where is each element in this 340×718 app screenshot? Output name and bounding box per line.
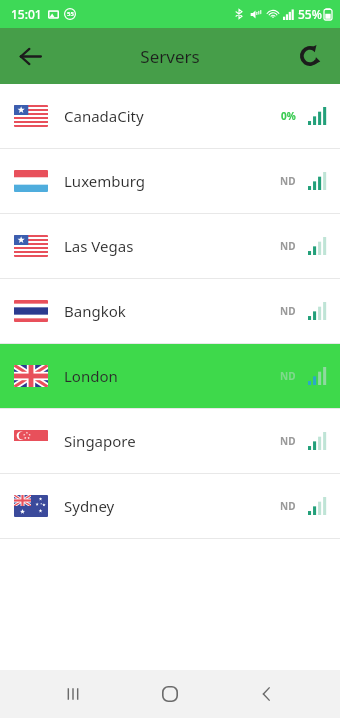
button[interactable]: Back: [243, 670, 291, 718]
button[interactable]: CanadaCity: [0, 84, 340, 148]
staticText: 0%: [281, 109, 296, 123]
button[interactable]: Recents: [49, 670, 97, 718]
staticText: CanadaCity: [64, 106, 144, 126]
staticText: ND: [280, 174, 296, 188]
button[interactable]: Luxemburg: [0, 149, 340, 213]
button[interactable]: Home: [146, 670, 194, 718]
staticText: 55: [67, 10, 74, 18]
staticText: Sydney: [64, 496, 115, 516]
staticText: London: [64, 366, 118, 386]
button[interactable]: Sydney: [0, 474, 340, 538]
button[interactable]: Refresh: [288, 34, 332, 78]
staticText: ND: [280, 499, 296, 513]
staticText: Singapore: [64, 431, 136, 451]
staticText: 55%: [298, 6, 322, 22]
staticText: Luxemburg: [64, 171, 146, 191]
staticText: Las Vegas: [64, 236, 134, 256]
staticText: Bangkok: [64, 301, 126, 321]
staticText: ND: [280, 304, 296, 318]
button[interactable]: Bangkok: [0, 279, 340, 343]
button[interactable]: Back: [8, 34, 52, 78]
button[interactable]: Las Vegas: [0, 214, 340, 278]
button[interactable]: London: [0, 344, 340, 408]
staticText: 15:01: [11, 6, 42, 22]
staticText: ND: [280, 369, 296, 383]
staticText: Servers: [140, 45, 200, 68]
staticText: ND: [280, 434, 296, 448]
button[interactable]: Singapore: [0, 409, 340, 473]
staticText: ND: [280, 239, 296, 253]
